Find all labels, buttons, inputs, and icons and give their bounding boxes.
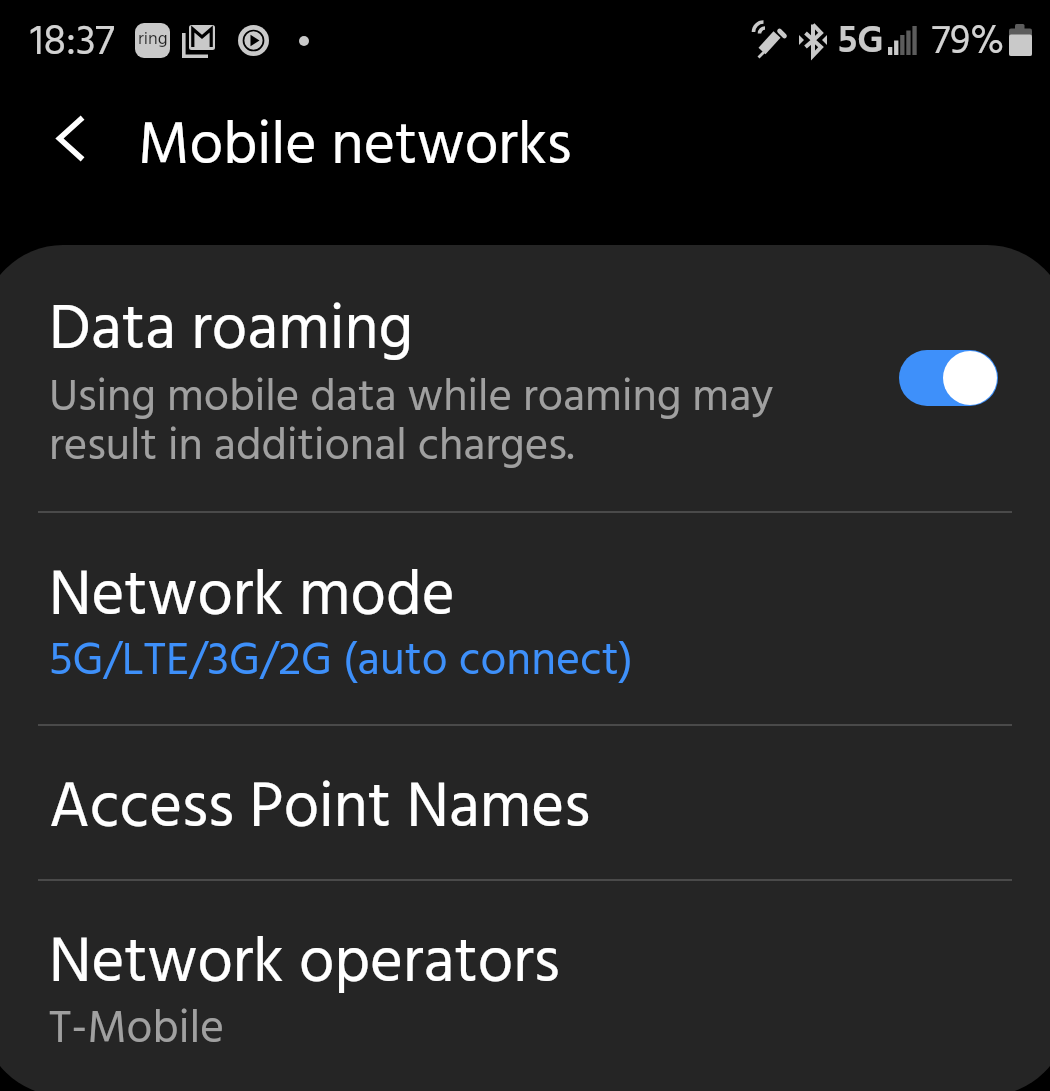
button[interactable]: Network operators [0, 879, 1050, 1091]
staticText: Network operators [49, 915, 560, 1016]
staticText: Using mobile data while roaming may resu… [49, 363, 774, 484]
staticText: T-Mobile [49, 993, 225, 1067]
staticText: 5G [838, 12, 884, 73]
button[interactable]: Data roaming switch [899, 350, 998, 406]
staticText: Network mode [49, 548, 455, 649]
staticText: Data roaming [49, 282, 414, 383]
staticText: Mobile networks [138, 100, 572, 196]
button[interactable]: Data roaming [0, 245, 1050, 511]
button[interactable]: Access Point Names [0, 724, 1050, 879]
staticText: 18:37 [30, 10, 115, 77]
staticText: Access Point Names [49, 760, 591, 861]
staticText: 5G/LTE/3G/2G (auto connect) [49, 625, 633, 699]
button[interactable]: Network mode [0, 511, 1050, 724]
button[interactable]: Navigate up [36, 105, 103, 172]
staticText: ring [138, 25, 168, 54]
staticText: 79% [932, 11, 1005, 75]
